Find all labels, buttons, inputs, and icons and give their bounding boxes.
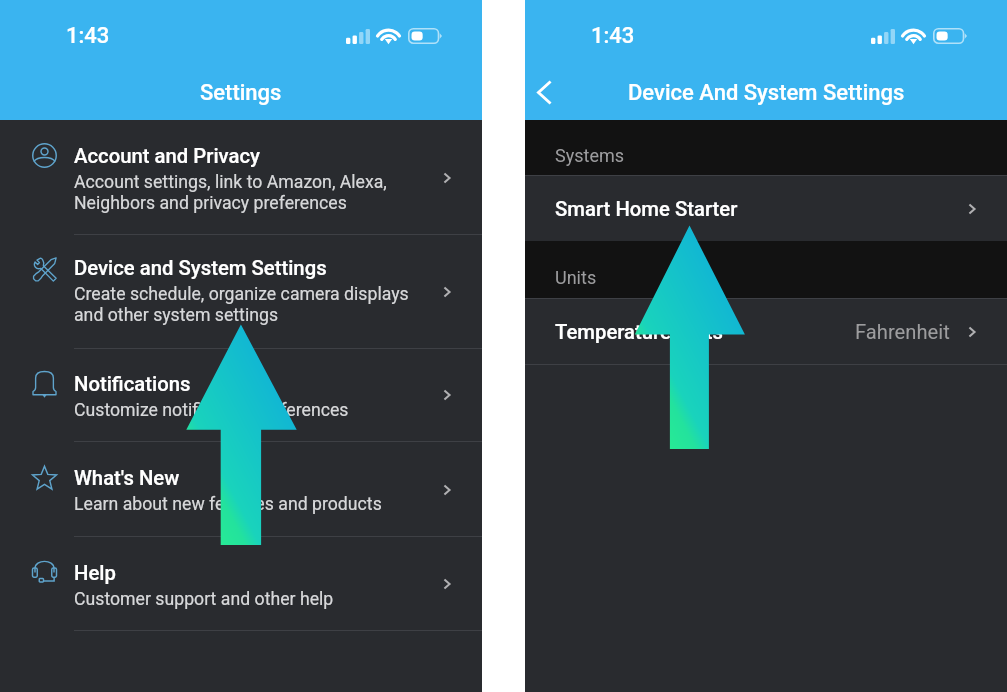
staticText: Customer support and other help [74, 589, 334, 610]
staticText: Account settings, link to Amazon, Alexa,… [74, 172, 387, 213]
staticText: Smart Home Starter [555, 197, 738, 221]
staticText: Notifications [74, 372, 191, 396]
button[interactable]: Back [521, 69, 567, 115]
staticText: Settings [200, 80, 282, 106]
staticText: Temperature Units [555, 320, 723, 344]
staticText: Systems [555, 145, 625, 166]
staticText: Customize notification preferences [74, 400, 349, 421]
staticText: 1:43 [66, 23, 110, 49]
staticText: Units [555, 267, 597, 288]
staticText: Account and Privacy [74, 144, 260, 168]
staticText: Device And System Settings [628, 80, 905, 106]
button[interactable]: Help [0, 537, 482, 631]
staticText: Learn about new features and products [74, 494, 382, 515]
button[interactable]: Device and System Settings [0, 235, 482, 349]
button[interactable]: Account and Privacy [0, 120, 482, 235]
staticText: Fahrenheit [855, 320, 950, 344]
staticText: Device and System Settings [74, 256, 327, 280]
button[interactable]: What's New [0, 442, 482, 537]
button[interactable]: Temperature Units [525, 298, 1007, 365]
staticText: Help [74, 561, 116, 585]
staticText: 1:43 [591, 23, 635, 49]
staticText: What's New [74, 466, 180, 490]
button[interactable]: Notifications [0, 348, 482, 442]
staticText: Create schedule, organize camera display… [74, 284, 409, 325]
button[interactable]: Smart Home Starter [525, 175, 1007, 242]
